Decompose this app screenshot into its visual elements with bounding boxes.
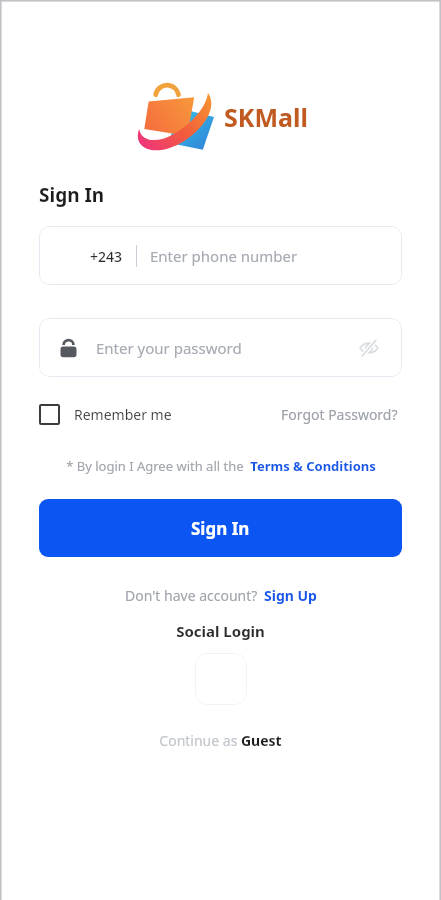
button[interactable]: Forgot Password? xyxy=(281,405,398,424)
staticText: +243 xyxy=(90,247,123,266)
staticText: Forgot Password? xyxy=(281,405,398,424)
button[interactable]: Continue as Guest xyxy=(39,731,402,750)
button[interactable]: Sign Up xyxy=(264,586,317,605)
staticText: Sign In xyxy=(39,182,105,208)
staticText: Continue as Guest xyxy=(159,731,282,750)
button[interactable]: +243 xyxy=(39,226,402,285)
staticText: * By login I Agree with all the Terms & … xyxy=(66,457,376,475)
button[interactable]: Enter your password xyxy=(39,318,402,377)
button[interactable]: Remember me xyxy=(39,404,172,425)
button[interactable]: Sign In xyxy=(39,499,402,557)
staticText: Don't have account? xyxy=(125,586,258,605)
button[interactable]: Show password xyxy=(356,335,382,361)
staticText: Sign Up xyxy=(264,586,317,605)
staticText: Social Login xyxy=(39,621,402,641)
staticText: Enter your password xyxy=(96,338,242,358)
staticText: Sign In xyxy=(191,517,250,540)
staticText: SKMall xyxy=(224,100,308,134)
button[interactable]: * By login I Agree with all the Terms & … xyxy=(39,457,402,475)
staticText: Enter phone number xyxy=(150,246,298,266)
staticText: Remember me xyxy=(74,405,172,424)
